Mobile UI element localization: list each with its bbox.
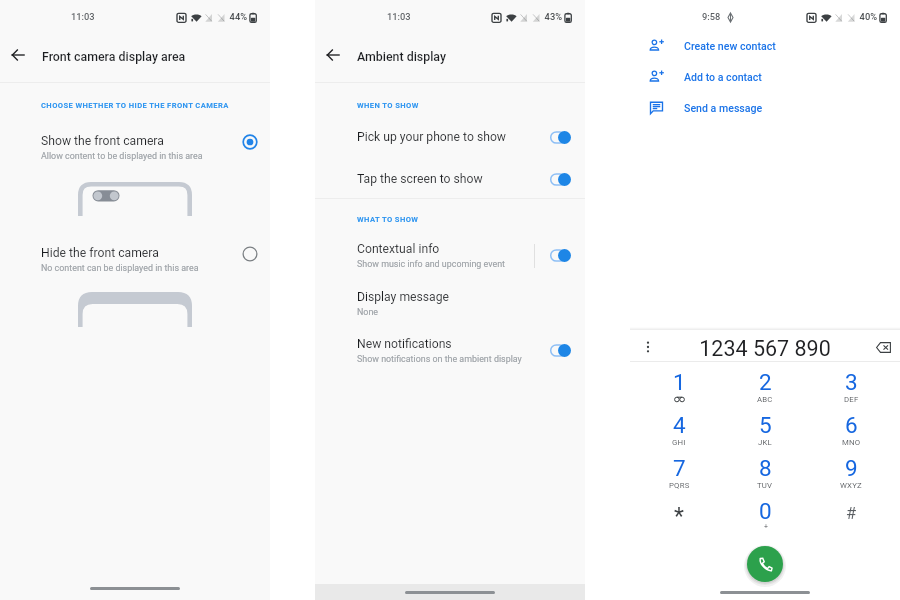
staticText: 0 bbox=[759, 498, 772, 524]
staticText: Create new contact bbox=[684, 40, 776, 52]
staticText: New notifications bbox=[357, 337, 452, 351]
staticText: * bbox=[674, 503, 684, 530]
staticText: Hide the front camera bbox=[41, 246, 159, 260]
button[interactable]: Toggle bbox=[550, 173, 571, 186]
staticText: 11:03 bbox=[387, 11, 411, 22]
button[interactable]: 2 bbox=[722, 369, 808, 412]
button[interactable]: Call bbox=[747, 546, 783, 582]
button[interactable]: Back bbox=[0, 26, 270, 82]
staticText: 8 bbox=[759, 455, 772, 481]
staticText: + bbox=[764, 523, 768, 531]
button[interactable]: 0 bbox=[722, 498, 808, 541]
staticText: JKL bbox=[758, 438, 772, 447]
staticText: Show the front camera bbox=[41, 134, 164, 148]
staticText: # bbox=[846, 504, 857, 523]
staticText: 6 bbox=[845, 412, 858, 438]
staticText: Pick up your phone to show bbox=[357, 130, 506, 144]
staticText: Allow content to be displayed in this ar… bbox=[41, 151, 203, 161]
staticText: Tap the screen to show bbox=[357, 172, 483, 186]
button[interactable]: Tap the screen to show bbox=[315, 172, 585, 186]
staticText: Front camera display area bbox=[42, 49, 186, 64]
staticText: 11:03 bbox=[71, 11, 95, 22]
button[interactable]: Send a message bbox=[630, 92, 900, 123]
staticText: Show music info and upcoming event bbox=[357, 259, 505, 269]
staticText: Add to a contact bbox=[684, 71, 762, 83]
button[interactable]: More options bbox=[638, 337, 658, 357]
staticText: Display message bbox=[357, 290, 450, 304]
staticText: 7 bbox=[673, 455, 686, 481]
staticText: Contextual info bbox=[357, 242, 440, 256]
button[interactable]: Backspace bbox=[872, 336, 894, 358]
button[interactable]: Contextual info bbox=[315, 242, 585, 269]
button[interactable]: # bbox=[808, 498, 894, 541]
button[interactable]: 1 bbox=[636, 369, 722, 412]
staticText: 43% bbox=[315, 11, 562, 22]
staticText: 9 bbox=[845, 455, 858, 481]
button[interactable]: Back bbox=[10, 47, 26, 63]
staticText: PQRS bbox=[669, 481, 690, 490]
staticText: Show notifications on the ambient displa… bbox=[357, 354, 522, 364]
button[interactable]: New notifications bbox=[315, 337, 585, 364]
staticText: 2 bbox=[759, 369, 772, 395]
button[interactable]: Toggle bbox=[550, 344, 571, 357]
button[interactable]: Show the front camera bbox=[0, 134, 270, 161]
button[interactable]: Back bbox=[325, 47, 341, 63]
staticText: WHAT TO SHOW bbox=[357, 215, 419, 224]
button[interactable]: Add to a contact bbox=[630, 61, 900, 92]
staticText: WXYZ bbox=[840, 481, 862, 490]
staticText: CHOOSE WHETHER TO HIDE THE FRONT CAMERA bbox=[41, 101, 229, 110]
staticText: 4 bbox=[673, 412, 686, 438]
button[interactable]: Back bbox=[315, 26, 585, 82]
button[interactable]: 8 bbox=[722, 455, 808, 498]
staticText: 1 bbox=[673, 369, 686, 395]
staticText: ABC bbox=[757, 395, 773, 404]
staticText: TUV bbox=[757, 481, 773, 490]
button[interactable]: 3 bbox=[808, 369, 894, 412]
staticText: 1234 567 890 bbox=[630, 336, 900, 361]
staticText: DEF bbox=[844, 395, 859, 404]
staticText: 3 bbox=[845, 369, 858, 395]
button[interactable]: Toggle bbox=[550, 131, 571, 144]
button[interactable]: Hide the front camera bbox=[0, 246, 270, 273]
button[interactable]: Pick up your phone to show bbox=[315, 130, 585, 144]
button[interactable]: 4 bbox=[636, 412, 722, 455]
button[interactable]: 7 bbox=[636, 455, 722, 498]
staticText: Send a message bbox=[684, 102, 763, 114]
button[interactable]: 6 bbox=[808, 412, 894, 455]
button[interactable]: 9 bbox=[808, 455, 894, 498]
staticText: 44% bbox=[0, 11, 247, 22]
staticText: GHI bbox=[672, 438, 686, 447]
staticText: 40% bbox=[630, 11, 877, 22]
button[interactable]: * bbox=[636, 498, 722, 541]
button[interactable]: 5 bbox=[722, 412, 808, 455]
staticText: Ambient display bbox=[357, 49, 447, 64]
staticText: WHEN TO SHOW bbox=[357, 101, 419, 110]
staticText: 9:58 bbox=[702, 11, 721, 22]
staticText: 5 bbox=[759, 412, 772, 438]
button[interactable]: Toggle bbox=[550, 249, 571, 262]
staticText: MNO bbox=[842, 438, 861, 447]
staticText: No content can be displayed in this area bbox=[41, 263, 199, 273]
button[interactable]: Display message bbox=[315, 290, 585, 317]
button[interactable]: Create new contact bbox=[630, 30, 900, 61]
staticText: None bbox=[357, 307, 379, 317]
